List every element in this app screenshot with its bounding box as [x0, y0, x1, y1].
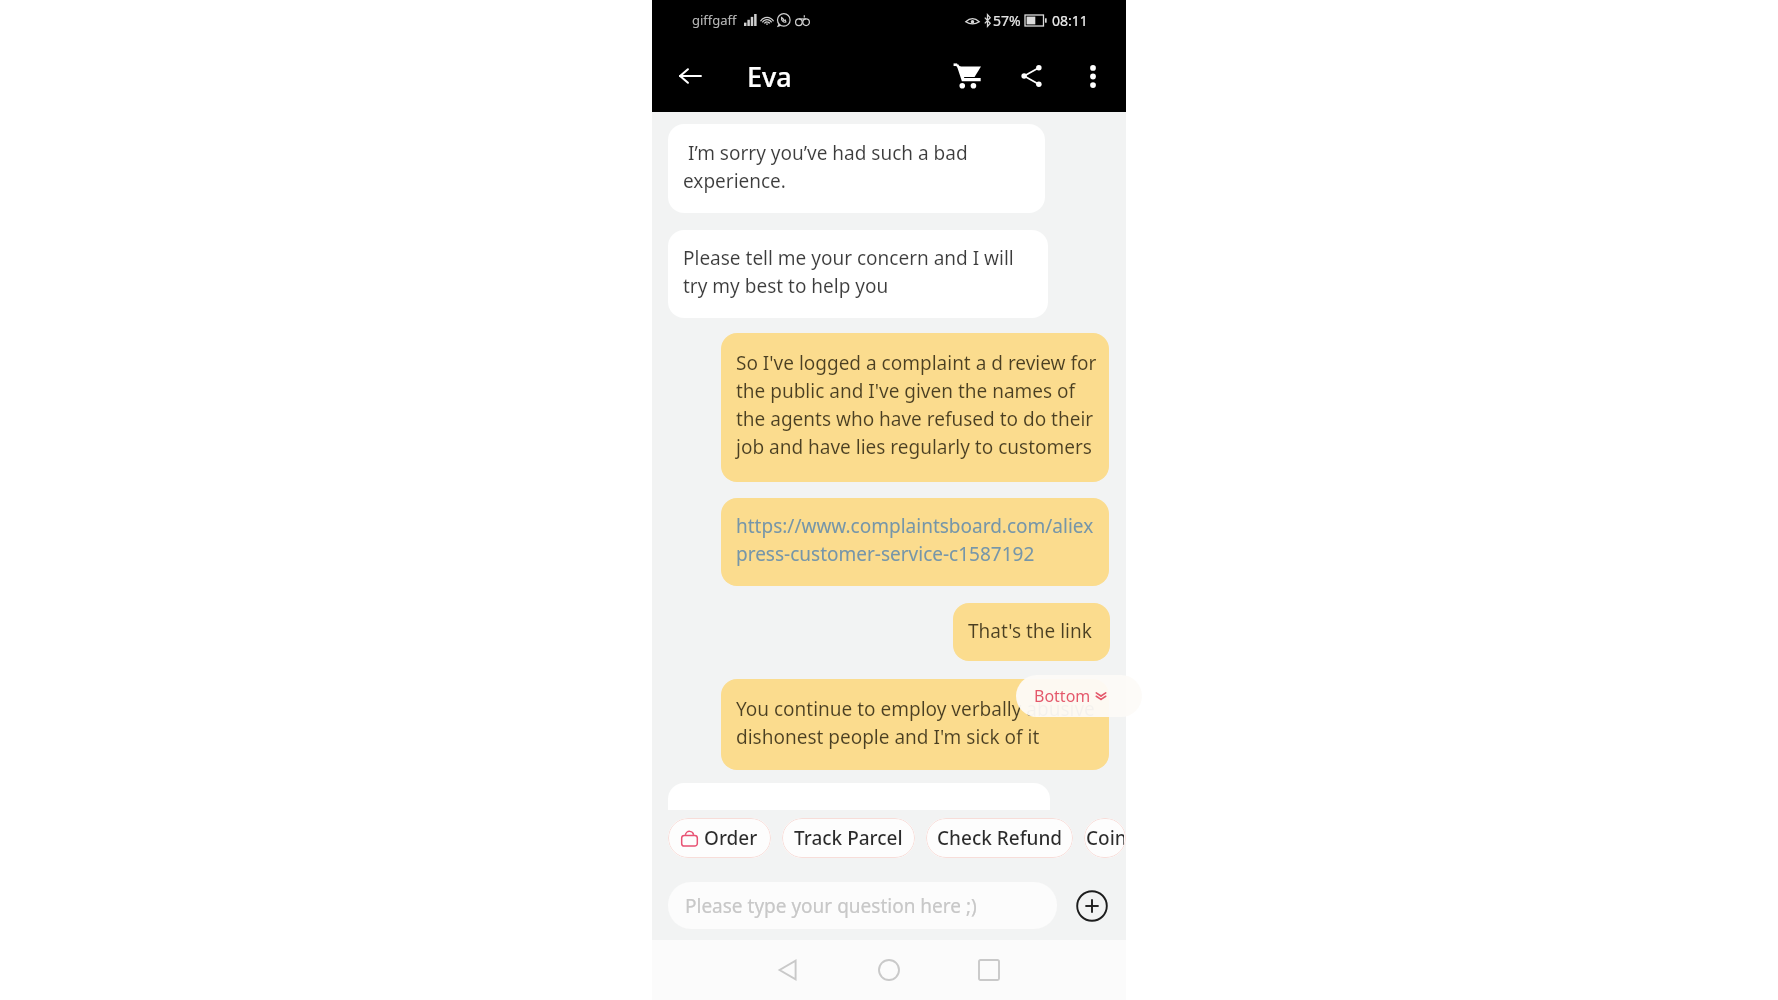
button[interactable]: So I've logged a complaint a d review fo… [721, 333, 1109, 482]
button[interactable]: More options [1072, 55, 1114, 97]
staticText: 57% [993, 11, 1021, 30]
button[interactable]: Back [668, 54, 712, 98]
staticText: Bottom [1034, 685, 1091, 707]
button[interactable]: Home [865, 946, 913, 994]
button[interactable]: Please tell me your concern and I will t… [668, 230, 1048, 318]
staticText: giffgaff [692, 11, 737, 29]
staticText: Eva [747, 58, 792, 95]
staticText: Coins [1086, 825, 1124, 851]
button[interactable]: Recent apps [965, 946, 1013, 994]
staticText: https://www.complaintsboard.com/aliex pr… [736, 513, 1094, 567]
button[interactable]: I’m sorry you’ve had such a bad experien… [668, 124, 1045, 213]
button[interactable]: Add attachment [1071, 885, 1112, 927]
staticText: Order [704, 825, 758, 851]
staticText: You continue to employ verbally abusive … [736, 696, 1103, 750]
button[interactable]: Track Parcel [782, 818, 915, 858]
button[interactable]: https://www.complaintsboard.com/aliex pr… [721, 498, 1109, 586]
button[interactable]: Bottom [1016, 675, 1142, 717]
button[interactable]: That's the link [953, 603, 1110, 661]
button[interactable]: Shopping cart [944, 53, 990, 99]
button[interactable]: Back [764, 946, 812, 994]
staticText: Track Parcel [794, 825, 903, 851]
staticText: That's the link [968, 618, 1092, 644]
staticText: Please type your question here ;) [685, 893, 977, 919]
staticText: Please tell me your concern and I will t… [683, 245, 1042, 299]
button[interactable]: Share [1009, 54, 1053, 98]
button[interactable]: Check Refund [926, 818, 1073, 858]
staticText: So I've logged a complaint a d review fo… [736, 350, 1103, 460]
button[interactable]: Order [668, 818, 771, 858]
staticText: I’m sorry you’ve had such a bad experien… [683, 140, 1039, 194]
staticText: 08:11 [1052, 11, 1088, 30]
button[interactable]: You continue to employ verbally abusive … [721, 679, 1109, 770]
button[interactable]: Coins [1084, 818, 1126, 858]
button[interactable]: Please type your question here ;) [668, 882, 1057, 929]
staticText: Check Refund [937, 825, 1063, 851]
